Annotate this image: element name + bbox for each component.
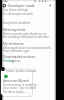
button[interactable] <box>1 69 32 96</box>
staticText: for development work <box>3 12 34 16</box>
staticText: A new version is ready for <box>3 83 37 87</box>
staticText: System update available <box>6 69 37 73</box>
button[interactable] <box>2 55 52 64</box>
staticText: Developer mode <box>8 3 35 8</box>
staticText: your device. Tap to install <box>3 86 37 90</box>
staticText: the latest build. <box>3 90 24 94</box>
staticText: Use these settings <box>3 8 28 12</box>
staticText: Meeting mode <box>3 28 26 32</box>
staticText: Downloaded services <box>3 55 36 59</box>
staticText: from unknown apps <box>3 49 30 53</box>
button[interactable] <box>48 3 53 8</box>
button[interactable] <box>2 42 52 53</box>
staticText: My territories <box>3 42 24 46</box>
staticText: Keep them disabled <box>3 21 30 25</box>
staticText: Pending <box>3 59 15 63</box>
button[interactable] <box>2 28 52 39</box>
staticText: Allow applications to request installs <box>3 46 51 50</box>
button[interactable] <box>2 3 7 8</box>
staticText: the meetings detected on calendar <box>3 35 49 39</box>
staticText: update <box>10 59 21 63</box>
staticText: American Wizard <box>3 79 29 83</box>
staticText: Silence sounds and vibrations on <box>3 32 47 36</box>
